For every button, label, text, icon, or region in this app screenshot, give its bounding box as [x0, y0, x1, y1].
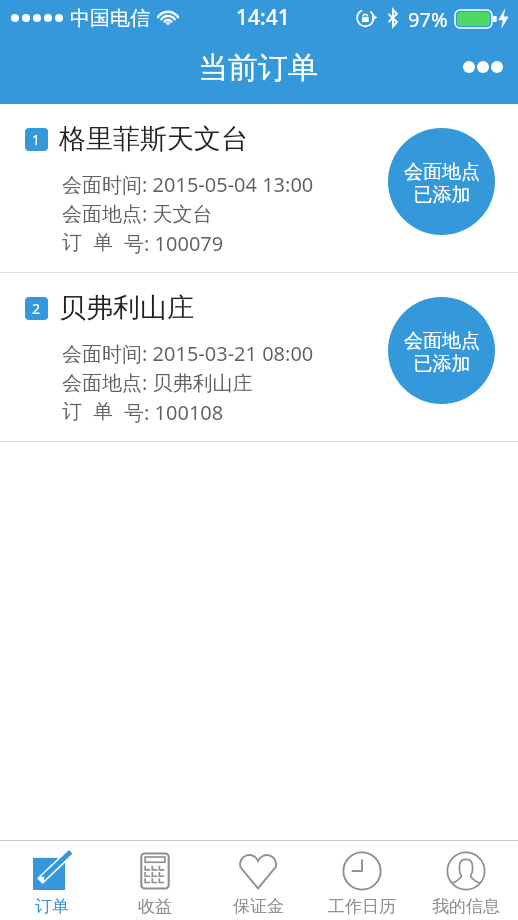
staticText: 单 — [93, 230, 113, 255]
staticText: 当前订单 — [198, 49, 318, 87]
staticText: 97% — [408, 6, 448, 33]
staticText: 会面地点 已添加 — [404, 329, 480, 376]
staticText: 会面地点: 贝弗利山庄 — [62, 369, 253, 396]
staticText: 订 — [62, 230, 82, 255]
staticText: 号: 100108 — [124, 399, 224, 426]
staticText: 会面时间: 2015-05-04 13:00 — [62, 171, 314, 198]
staticText: 订单 — [35, 896, 69, 917]
staticText: 工作日历 — [328, 896, 396, 917]
staticText: 1 — [32, 130, 41, 149]
staticText: 14:41 — [236, 3, 290, 32]
button[interactable]: 收益 — [103, 841, 206, 920]
staticText: 单 — [93, 399, 113, 424]
button[interactable]: 我的信息 — [414, 841, 518, 920]
staticText: 中国电信 — [70, 6, 150, 31]
staticText: 会面地点 已添加 — [404, 160, 480, 207]
button[interactable]: More options — [455, 53, 511, 81]
staticText: 号: 100079 — [124, 230, 224, 257]
button[interactable]: 订单 — [0, 841, 103, 920]
button[interactable]: 1 — [0, 104, 518, 273]
staticText: 我的信息 — [432, 896, 500, 917]
staticText: 会面地点: 天文台 — [62, 200, 213, 227]
staticText: 2 — [32, 299, 41, 318]
button[interactable]: 工作日历 — [310, 841, 414, 920]
staticText: 收益 — [138, 896, 172, 917]
staticText: 保证金 — [233, 896, 284, 917]
button[interactable]: 会面地点 已添加 — [388, 128, 495, 235]
staticText: 会面时间: 2015-03-21 08:00 — [62, 340, 314, 367]
staticText: 订 — [62, 399, 82, 424]
staticText: 格里菲斯天文台 — [59, 122, 248, 156]
button[interactable]: 保证金 — [206, 841, 310, 920]
staticText: 贝弗利山庄 — [59, 291, 194, 325]
button[interactable]: 2 — [0, 273, 518, 442]
button[interactable]: 会面地点 已添加 — [388, 297, 495, 404]
